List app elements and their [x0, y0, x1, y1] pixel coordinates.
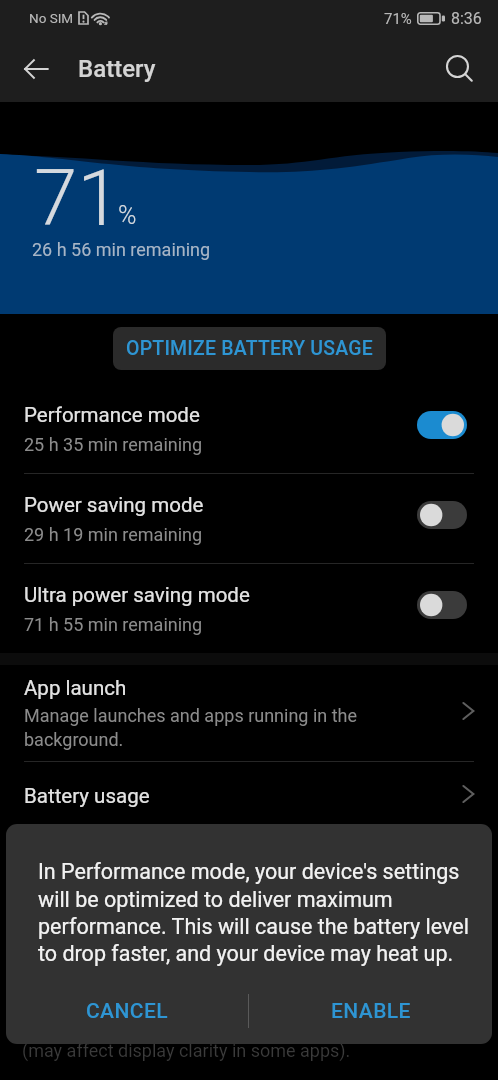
staticText: ENABLE [331, 999, 411, 1024]
staticText: 29 h 19 min remaining [24, 524, 203, 545]
staticText: CANCEL [86, 999, 168, 1024]
button[interactable]: Back [12, 45, 60, 93]
button[interactable]: Search [436, 45, 484, 93]
staticText: (may affect display clarity in some apps… [22, 1040, 351, 1061]
button[interactable]: Battery usage [0, 762, 498, 830]
staticText: 71% [384, 10, 412, 28]
staticText: No SIM [29, 10, 74, 26]
staticText: 71 h 55 min remaining [24, 614, 203, 635]
staticText: Battery [78, 55, 156, 83]
staticText: App launch [24, 676, 127, 700]
staticText: 71 [34, 153, 121, 244]
button[interactable]: Off [417, 499, 467, 531]
staticText: Battery usage [24, 784, 150, 808]
staticText: Ultra power saving mode [24, 583, 250, 607]
staticText: OPTIMIZE BATTERY USAGE [126, 337, 373, 360]
button[interactable]: Off [417, 589, 467, 621]
button[interactable]: OPTIMIZE BATTERY USAGE [113, 327, 386, 370]
staticText: 8:36 [451, 9, 482, 28]
button[interactable]: CANCEL [6, 978, 248, 1044]
button[interactable]: Power saving mode [0, 474, 498, 563]
staticText: 26 h 56 min remaining [32, 239, 211, 260]
staticText: % [118, 201, 137, 230]
button[interactable]: Performance mode [0, 384, 498, 473]
button[interactable]: ENABLE [249, 978, 492, 1044]
staticText: Manage launches and apps running in the … [24, 705, 358, 750]
button[interactable]: Ultra power saving mode [0, 564, 498, 653]
staticText: Performance mode [24, 403, 200, 427]
staticText: 25 h 35 min remaining [24, 434, 203, 455]
button[interactable]: On [417, 409, 467, 441]
staticText: Power saving mode [24, 493, 204, 517]
button[interactable]: App launch [0, 665, 498, 761]
staticText: In Performance mode, your device's setti… [38, 859, 469, 966]
